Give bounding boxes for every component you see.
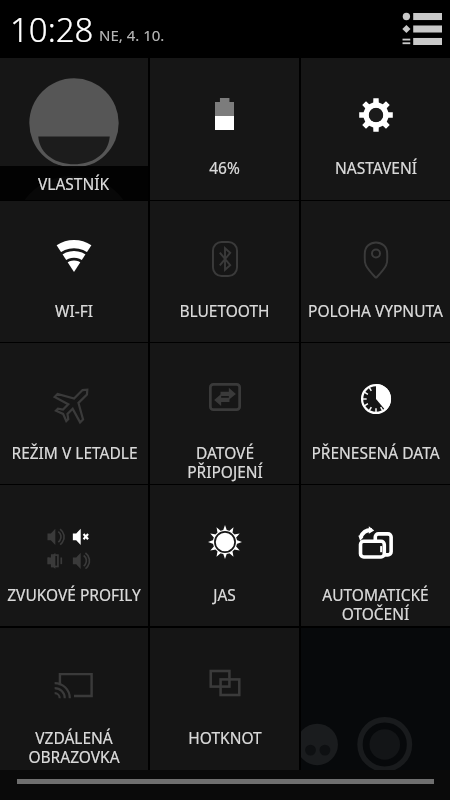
- staticText: DATOVÉ PŘIPOJENÍ: [187, 442, 263, 482]
- staticText: JAS: [213, 584, 236, 605]
- button[interactable]: 46%: [150, 58, 299, 200]
- button[interactable]: WI-FI: [0, 201, 148, 342]
- staticText: VLASTNÍK: [38, 173, 110, 194]
- staticText: AUTOMATICKÉ OTOČENÍ: [322, 584, 429, 624]
- button[interactable]: ZVUKOVÉ PROFILY: [0, 485, 148, 626]
- button[interactable]: NASTAVENÍ: [301, 58, 450, 200]
- staticText: PŘENESENÁ DATA: [311, 442, 440, 463]
- staticText: VZDÁLENÁ OBRAZOVKA: [28, 727, 120, 767]
- staticText: POLOHA VYPNUTA: [308, 300, 443, 321]
- button[interactable]: HOTKNOT: [150, 628, 299, 770]
- button[interactable]: POLOHA VYPNUTA: [301, 201, 450, 342]
- button[interactable]: PŘENESENÁ DATA: [301, 343, 450, 484]
- button[interactable]: DATOVÉ PŘIPOJENÍ: [150, 343, 299, 484]
- staticText: WI-FI: [55, 300, 93, 321]
- staticText: HOTKNOT: [188, 727, 262, 748]
- staticText: 46%: [209, 157, 240, 178]
- staticText: ZVUKOVÉ PROFILY: [7, 584, 141, 605]
- staticText: BLUETOOTH: [179, 300, 270, 321]
- button[interactable]: VZDÁLENÁ OBRAZOVKA: [0, 628, 148, 770]
- button[interactable]: JAS: [150, 485, 299, 626]
- staticText: NE, 4. 10.: [99, 25, 165, 45]
- button[interactable]: VLASTNÍK: [0, 58, 148, 200]
- button[interactable]: Notifications: [402, 13, 442, 45]
- button[interactable]: BLUETOOTH: [150, 201, 299, 342]
- button[interactable]: AUTOMATICKÉ OTOČENÍ: [301, 485, 450, 626]
- staticText: NASTAVENÍ: [335, 157, 417, 178]
- button[interactable]: REŽIM V LETADLE: [0, 343, 148, 484]
- staticText: 10:28: [10, 7, 94, 52]
- staticText: REŽIM V LETADLE: [11, 442, 138, 463]
